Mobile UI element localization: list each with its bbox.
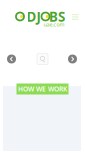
staticText: HOW WE WORK <box>18 85 67 93</box>
button[interactable]: Next slide <box>68 54 77 63</box>
button[interactable]: Menu <box>69 11 81 22</box>
staticText: BS <box>49 8 65 25</box>
staticText: DJ <box>26 8 40 25</box>
staticText: uae.com <box>43 21 64 28</box>
button[interactable]: Previous slide <box>7 54 16 63</box>
button[interactable]: HOW WE WORK <box>16 83 68 94</box>
